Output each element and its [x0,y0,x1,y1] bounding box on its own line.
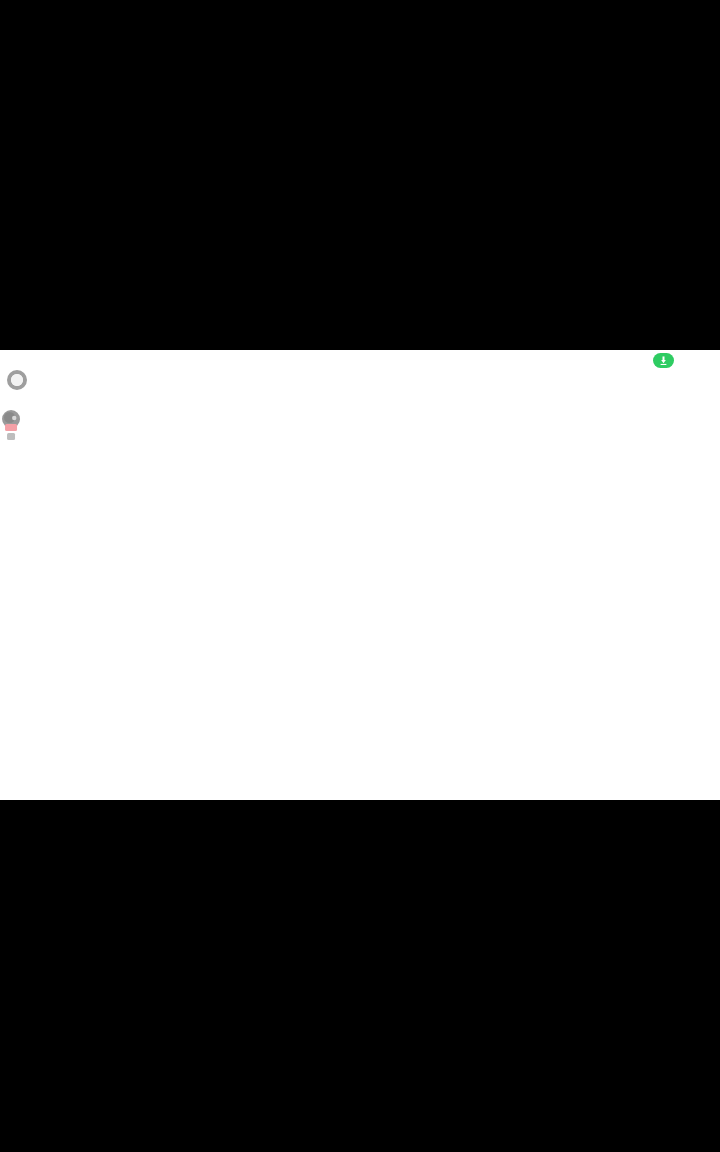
other: Loading [6,369,28,391]
other: Marker [0,410,24,442]
button[interactable]: Download [653,353,674,368]
